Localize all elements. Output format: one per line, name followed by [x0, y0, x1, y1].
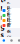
staticText: Privacy — [7, 12, 11, 39]
staticText: General — [7, 0, 11, 26]
staticText: Sounds — [7, 7, 11, 34]
staticText: Display — [7, 5, 11, 26]
staticText: Settings — [0, 0, 6, 39]
